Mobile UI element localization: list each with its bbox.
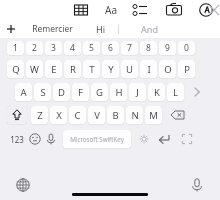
staticText: 1	[13, 42, 18, 54]
staticText: 0	[184, 42, 189, 54]
staticText: Remercier	[32, 23, 73, 35]
button[interactable]: 4	[64, 41, 81, 55]
button[interactable]: Add	[0, 20, 22, 38]
button[interactable]: 7	[121, 41, 138, 55]
button[interactable]: P	[178, 60, 195, 78]
staticText: 8	[146, 42, 151, 54]
staticText: F	[78, 86, 83, 99]
staticText: 4	[70, 42, 75, 54]
button[interactable]: 2	[26, 41, 43, 55]
staticText: R	[70, 63, 76, 76]
staticText: G	[96, 86, 103, 99]
staticText: And	[141, 23, 158, 35]
staticText: T	[89, 63, 95, 76]
button[interactable]: Camera	[164, 0, 184, 20]
button[interactable]: Markup	[198, 0, 214, 20]
button[interactable]: C	[69, 106, 86, 124]
button[interactable]: Next	[190, 83, 204, 101]
staticText: 123	[10, 134, 24, 145]
button[interactable]: Resize	[179, 130, 195, 148]
button[interactable]: K	[148, 83, 165, 101]
staticText: 7	[127, 42, 132, 54]
staticText: 2	[32, 42, 37, 54]
button[interactable]: L	[167, 83, 184, 101]
button[interactable]: Hi	[82, 20, 118, 38]
staticText: A	[20, 86, 27, 99]
button[interactable]: E	[45, 60, 62, 78]
button[interactable]: Z	[31, 106, 48, 124]
button[interactable]: N	[126, 106, 143, 124]
staticText: Hi	[96, 23, 105, 35]
button[interactable]: Microphone	[188, 177, 206, 197]
button[interactable]: List	[132, 0, 150, 20]
button[interactable]: 123	[7, 130, 27, 148]
button[interactable]: Delete	[167, 106, 189, 124]
staticText: D	[58, 86, 65, 99]
button[interactable]: M	[145, 106, 162, 124]
staticText: O	[164, 63, 172, 76]
staticText: Q	[12, 63, 20, 76]
button[interactable]: Aa	[102, 0, 120, 20]
button[interactable]: Table	[72, 0, 90, 20]
button[interactable]: A	[15, 83, 32, 101]
button[interactable]: I	[140, 60, 157, 78]
staticText: K	[154, 86, 160, 99]
button[interactable]: 3	[45, 41, 62, 55]
staticText: B	[112, 109, 119, 122]
staticText: 5	[89, 42, 94, 54]
button[interactable]: W	[26, 60, 43, 78]
button[interactable]: J	[129, 83, 146, 101]
button[interactable]: Remercier	[22, 20, 82, 38]
staticText: H	[115, 86, 123, 99]
staticText: S	[40, 86, 46, 99]
button[interactable]: 0	[178, 41, 195, 55]
staticText: J	[136, 86, 139, 99]
staticText: N	[131, 109, 139, 122]
staticText: P	[184, 63, 190, 76]
button[interactable]: H	[110, 83, 127, 101]
button[interactable]: U	[121, 60, 138, 78]
button[interactable]: R	[64, 60, 81, 78]
staticText: Z	[37, 109, 43, 122]
button[interactable]: Emoji	[27, 130, 43, 148]
button[interactable]: D	[53, 83, 70, 101]
button[interactable]: Settings	[137, 130, 151, 148]
button[interactable]: 5	[83, 41, 100, 55]
staticText: M	[149, 109, 158, 122]
button[interactable]: Y	[102, 60, 119, 78]
button[interactable]: 1	[7, 41, 24, 55]
button[interactable]: F	[72, 83, 89, 101]
button[interactable]: V	[88, 106, 105, 124]
staticText: W	[30, 63, 39, 76]
button[interactable]: And	[119, 20, 179, 38]
button[interactable]: G	[91, 83, 108, 101]
staticText: 6	[108, 42, 113, 54]
button[interactable]: Dictation	[43, 130, 59, 148]
button[interactable]: Shift	[7, 106, 27, 124]
staticText: E	[51, 63, 57, 76]
button[interactable]: X	[50, 106, 67, 124]
button[interactable]: S	[34, 83, 51, 101]
staticText: U	[126, 63, 133, 76]
staticText: V	[94, 109, 100, 122]
button[interactable]: Language	[14, 177, 32, 197]
button[interactable]: Microsoft SwiftKey	[63, 130, 131, 148]
staticText: L	[173, 86, 178, 99]
button[interactable]: 8	[140, 41, 157, 55]
staticText: Y	[108, 63, 114, 76]
staticText: I	[147, 63, 151, 76]
staticText: C	[74, 109, 81, 122]
button[interactable]: Q	[7, 60, 24, 78]
button[interactable]: O	[159, 60, 176, 78]
button[interactable]: Enter	[155, 130, 173, 148]
staticText: 9	[165, 42, 170, 54]
staticText: X	[56, 109, 62, 122]
button[interactable]: 6	[102, 41, 119, 55]
staticText: Aa	[105, 3, 117, 17]
button[interactable]: 9	[159, 41, 176, 55]
staticText: Microsoft SwiftKey	[70, 135, 124, 143]
button[interactable]: T	[83, 60, 100, 78]
button[interactable]: B	[107, 106, 124, 124]
staticText: 3	[51, 42, 56, 54]
